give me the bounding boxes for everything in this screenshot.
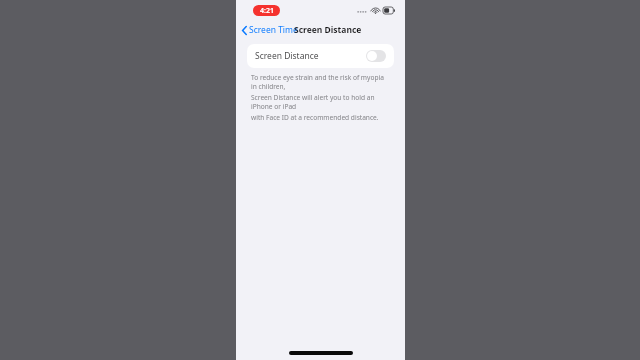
staticText: Screen Distance (255, 50, 319, 62)
staticText: Screen Time (249, 24, 298, 36)
staticText: 4:21 (260, 6, 274, 16)
staticText: Screen Distance (294, 24, 362, 36)
staticText: Screen Distance will alert you to hold a… (251, 93, 390, 111)
button[interactable]: Screen Distance (247, 44, 394, 68)
staticText: with Face ID at a recommended distance. (251, 113, 379, 122)
button[interactable]: Screen Time (240, 22, 300, 38)
staticText: To reduce eye strain and the risk of myo… (251, 73, 390, 91)
button[interactable]: Screen Distance toggle, off (366, 50, 386, 62)
